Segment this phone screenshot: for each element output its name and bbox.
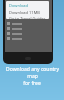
staticText: for free xyxy=(23,80,41,87)
button[interactable] xyxy=(5,26,52,31)
button[interactable] xyxy=(5,36,52,41)
staticText: Download xyxy=(9,3,29,8)
staticText: Download any country xyxy=(6,66,59,73)
button[interactable] xyxy=(5,21,52,26)
button[interactable] xyxy=(5,31,52,36)
staticText: map xyxy=(27,73,38,80)
staticText: Go to Travel Guides xyxy=(9,16,46,19)
staticText: Download 11MB xyxy=(9,10,40,15)
